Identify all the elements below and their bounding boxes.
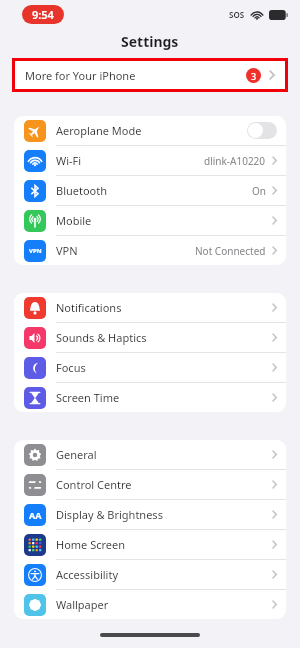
button[interactable]: More for Your iPhone: [15, 61, 285, 89]
button[interactable]: Sounds & Haptics: [14, 323, 286, 353]
button[interactable]: VPN: [14, 236, 286, 265]
button[interactable]: Aeroplane Mode toggle: [247, 122, 277, 139]
button[interactable]: General: [14, 440, 286, 470]
button[interactable]: Wi-Fi: [14, 146, 286, 176]
button[interactable]: Focus: [14, 353, 286, 383]
staticText: General: [56, 447, 97, 462]
button[interactable]: AA: [14, 500, 286, 530]
staticText: Not Connected: [195, 244, 266, 258]
staticText: Screen Time: [56, 390, 120, 405]
staticText: Notifications: [56, 300, 122, 315]
button[interactable]: Aeroplane Mode: [14, 116, 286, 146]
staticText: Accessibility: [56, 567, 119, 582]
staticText: Sounds & Haptics: [56, 330, 147, 345]
button[interactable]: Mobile: [14, 206, 286, 236]
staticText: Bluetooth: [56, 183, 108, 198]
button[interactable]: Accessibility: [14, 560, 286, 590]
button[interactable]: Screen Time: [14, 383, 286, 412]
staticText: Wallpaper: [56, 597, 109, 612]
staticText: dlink-A10220: [204, 154, 266, 168]
staticText: On: [252, 184, 266, 198]
staticText: Display & Brightness: [56, 507, 163, 522]
staticText: Home Screen: [56, 537, 126, 552]
button[interactable]: Home Screen: [14, 530, 286, 560]
staticText: Aeroplane Mode: [56, 123, 142, 138]
staticText: Control Centre: [56, 477, 132, 492]
button[interactable]: Bluetooth: [14, 176, 286, 206]
staticText: Settings: [121, 32, 179, 51]
staticText: Focus: [56, 360, 86, 375]
button[interactable]: Control Centre: [14, 470, 286, 500]
staticText: Wi-Fi: [56, 153, 82, 168]
button[interactable]: Wallpaper: [14, 590, 286, 619]
staticText: More for Your iPhone: [25, 68, 136, 83]
staticText: 3: [251, 70, 257, 82]
staticText: VPN: [29, 247, 42, 255]
staticText: Mobile: [56, 213, 92, 228]
staticText: 9:54: [32, 7, 54, 22]
staticText: SOS: [229, 9, 245, 20]
button[interactable]: Notifications: [14, 293, 286, 323]
staticText: AA: [29, 509, 42, 521]
staticText: VPN: [56, 243, 78, 258]
